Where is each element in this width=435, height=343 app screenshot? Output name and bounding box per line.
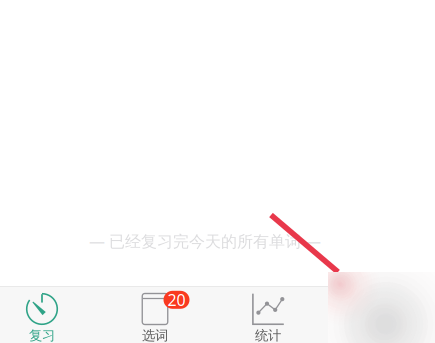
button[interactable]: 统计 [211,286,324,343]
staticText: — 已经复习完今天的所有单词 — [89,230,321,252]
button[interactable]: 复习 [0,286,98,343]
button[interactable]: 我的 [324,286,435,343]
staticText: 统计 [255,327,281,343]
staticText: 20 [167,289,185,310]
staticText: 复习 [29,327,55,343]
staticText: 选词 [142,327,168,343]
button[interactable]: 选词 [98,286,211,343]
